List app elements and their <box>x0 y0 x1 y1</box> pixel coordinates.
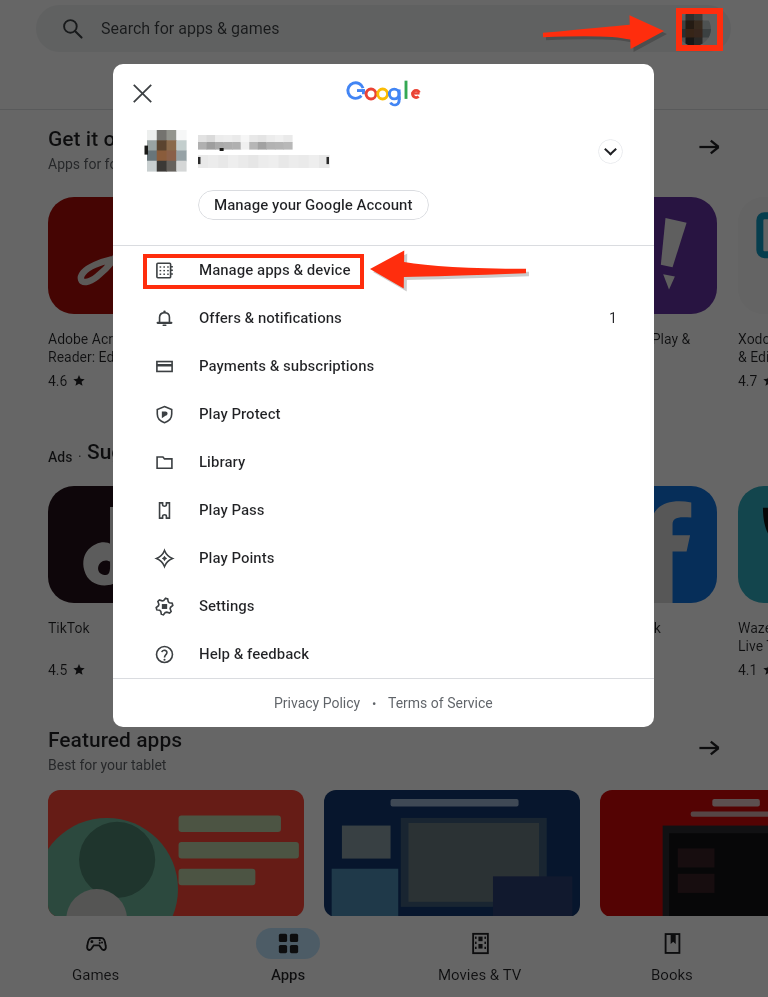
button[interactable]: Offers & notifications <box>113 294 654 342</box>
button[interactable]: Play Protect <box>113 390 654 438</box>
button[interactable]: Privacy Policy <box>274 695 361 711</box>
button[interactable]: Switch account <box>598 139 623 164</box>
staticText: Books <box>651 966 693 984</box>
staticText: Suggested for you <box>87 440 259 465</box>
button[interactable]: Library <box>113 438 654 486</box>
button[interactable] <box>738 486 768 603</box>
staticText: 1 <box>609 310 617 326</box>
button[interactable] <box>600 790 768 917</box>
staticText: Privacy Policy <box>274 695 361 711</box>
button[interactable]: Apps <box>240 916 336 997</box>
staticText: TikTok <box>48 620 90 636</box>
staticText: Payments & subscriptions <box>199 357 375 375</box>
staticText: Featured apps <box>48 728 183 753</box>
button[interactable] <box>186 486 303 603</box>
button[interactable]: Settings <box>113 582 654 630</box>
button[interactable] <box>48 486 165 603</box>
staticText: Facebook <box>600 620 661 636</box>
button[interactable] <box>48 790 304 917</box>
staticText: Search for apps & games <box>101 19 280 38</box>
button[interactable]: Manage apps & device <box>113 246 654 294</box>
button[interactable]: Help & feedback <box>113 630 654 678</box>
button[interactable]: Search for apps & games <box>36 5 731 52</box>
button[interactable]: See more <box>694 132 724 162</box>
staticText: Help & feedback <box>199 645 310 663</box>
button[interactable] <box>738 197 768 314</box>
staticText: Apps <box>271 966 306 984</box>
button[interactable] <box>324 197 441 314</box>
button[interactable]: Payments & subscriptions <box>113 342 654 390</box>
button[interactable] <box>324 790 580 917</box>
staticText: 4.6 <box>48 373 68 389</box>
staticText: Adobe Acrobat Reader: Edit PDF <box>48 331 152 366</box>
staticText: Play Points <box>199 549 275 567</box>
button[interactable] <box>600 486 717 603</box>
staticText: Offers & notifications <box>199 309 342 327</box>
staticText: Play Pass <box>199 501 265 519</box>
button[interactable]: Play Pass <box>113 486 654 534</box>
staticText: Apps for foldables <box>48 156 163 172</box>
button[interactable]: See more <box>694 733 724 763</box>
staticText: 4.2 <box>324 373 344 389</box>
staticText: Get it on Google Play <box>48 127 245 152</box>
staticText: Games <box>72 966 120 984</box>
button[interactable]: Terms of Service <box>388 695 493 711</box>
button[interactable]: Games <box>48 916 144 997</box>
button[interactable] <box>48 197 165 314</box>
staticText: Xodo PDF Reader & Editor <box>738 331 768 366</box>
staticText: Waze Navigation & Live Traffic <box>738 620 768 655</box>
staticText: 4.1 <box>738 662 758 678</box>
staticText: 4.7 <box>738 373 758 389</box>
button[interactable] <box>186 197 303 314</box>
staticText: 4.5 <box>48 662 68 678</box>
button[interactable] <box>462 197 579 314</box>
staticText: Ads <box>48 449 73 465</box>
staticText: · <box>78 449 82 465</box>
staticText: Play Protect <box>199 405 281 423</box>
staticText: Kahoot! Play & Quizzes <box>600 331 691 366</box>
staticText: Library <box>199 453 246 471</box>
button[interactable]: Play Points <box>113 534 654 582</box>
staticText: • <box>372 696 377 711</box>
button[interactable]: Movies & TV <box>432 916 528 997</box>
button[interactable]: Books <box>624 916 720 997</box>
staticText: Manage your Google Account <box>214 196 413 214</box>
button[interactable]: Close <box>132 83 153 104</box>
staticText: Movies & TV <box>438 966 522 984</box>
staticText: Settings <box>199 597 255 615</box>
staticText: Terms of Service <box>388 695 493 711</box>
button[interactable]: Manage your Google Account <box>198 190 429 220</box>
button[interactable]: Account <box>677 12 711 46</box>
staticText: Manage apps & device <box>199 261 351 279</box>
staticText: Best for your tablet <box>48 757 167 773</box>
button[interactable] <box>600 197 717 314</box>
